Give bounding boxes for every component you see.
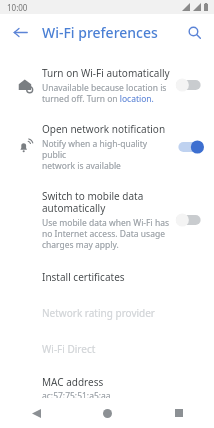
button[interactable]: Back bbox=[0, 398, 72, 428]
staticText: Switch to mobile data automatically bbox=[42, 189, 144, 215]
button[interactable]: Wi-Fi Direct bbox=[0, 331, 214, 367]
staticText: Wi-Fi preferences bbox=[42, 23, 158, 42]
button[interactable]: Off bbox=[176, 210, 206, 230]
button[interactable]: Off bbox=[176, 75, 206, 95]
button[interactable]: On bbox=[176, 137, 206, 157]
staticText: Wi-Fi Direct bbox=[42, 342, 96, 356]
staticText: Turn on Wi-Fi automatically bbox=[42, 66, 170, 80]
staticText: Unavailable because location is turned o… bbox=[42, 82, 167, 104]
staticText: MAC address bbox=[42, 375, 104, 389]
button[interactable]: Turn on Wi-Fi automatically bbox=[0, 57, 214, 113]
button[interactable]: Switch to mobile data automatically bbox=[0, 180, 214, 259]
staticText: Open network notification bbox=[42, 122, 166, 136]
button[interactable]: IP address bbox=[0, 410, 214, 428]
staticText: Install certificates bbox=[42, 270, 125, 284]
button[interactable]: MAC address bbox=[0, 367, 214, 410]
button[interactable]: Recent apps bbox=[143, 398, 214, 428]
staticText: Use mobile data when Wi-Fi has no Intern… bbox=[42, 217, 169, 250]
button[interactable]: Install certificates bbox=[0, 259, 214, 295]
button[interactable]: Home bbox=[72, 398, 143, 428]
button[interactable]: Open network notification bbox=[0, 113, 214, 180]
staticText: Network rating provider bbox=[42, 306, 155, 320]
button[interactable]: Network rating provider bbox=[0, 295, 214, 331]
staticText: Notify when a high-quality public networ… bbox=[42, 138, 172, 171]
button[interactable]: Search bbox=[180, 18, 208, 46]
button[interactable]: Back bbox=[6, 18, 34, 46]
staticText: 10:00 bbox=[7, 2, 28, 13]
staticText: ac:57:75:51:a5:aa bbox=[42, 390, 111, 402]
